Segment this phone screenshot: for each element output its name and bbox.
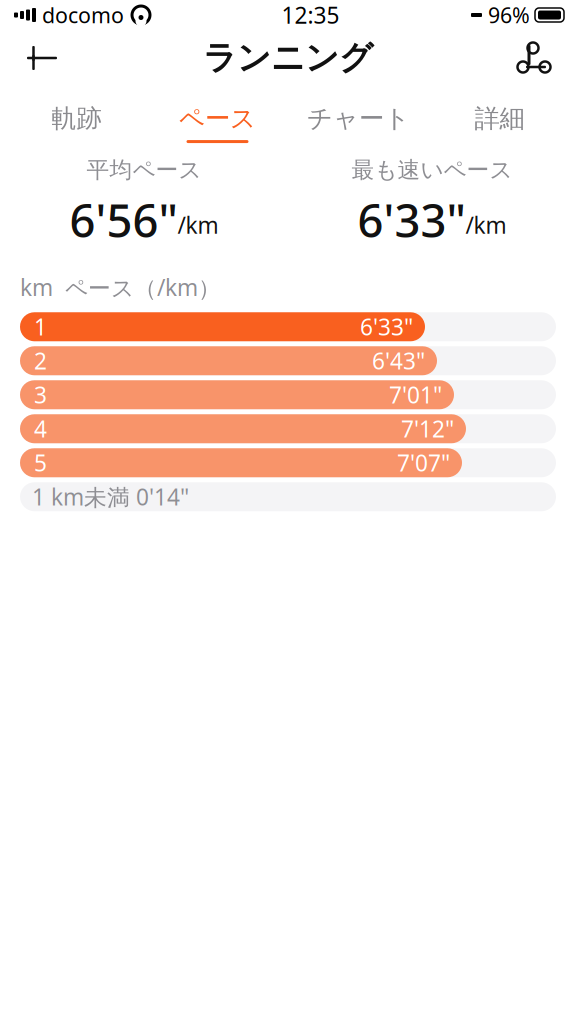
staticText: 詳細 (474, 103, 524, 134)
button[interactable]: ペース (147, 88, 288, 146)
staticText: 12:35 (281, 0, 339, 30)
staticText: 6'33" (360, 312, 413, 342)
staticText: 2 (34, 346, 47, 376)
staticText: 最も速いペース (351, 156, 512, 184)
staticText: 6'56" (69, 190, 177, 250)
staticText: /km (177, 210, 218, 240)
staticText: /km (465, 210, 506, 240)
staticText: 7'07" (397, 448, 450, 478)
staticText: 1 (34, 312, 47, 342)
button[interactable]: 軌跡 (6, 88, 147, 146)
button[interactable]: 詳細 (429, 88, 570, 146)
staticText: 軌跡 (51, 103, 101, 134)
staticText: docomo (42, 1, 124, 29)
button[interactable]: 共有 (506, 34, 562, 82)
staticText: 96% (488, 1, 530, 29)
staticText: 4 (34, 414, 47, 444)
staticText: チャート (307, 103, 410, 134)
staticText: 3 (34, 380, 47, 410)
staticText: 7'12" (401, 414, 454, 444)
button[interactable]: 戻る (14, 34, 70, 82)
staticText: 7'01" (389, 380, 442, 410)
staticText: ランニング (203, 37, 373, 78)
staticText: 6'43" (372, 346, 425, 376)
staticText: 1 km未満 0'14" (32, 482, 189, 512)
staticText: ペース (179, 103, 256, 134)
staticText: 5 (34, 448, 47, 478)
button[interactable]: チャート (288, 88, 429, 146)
staticText: 6'33" (357, 190, 465, 250)
staticText: km ペース（/km） (20, 272, 221, 302)
staticText: 平均ペース (86, 156, 201, 184)
